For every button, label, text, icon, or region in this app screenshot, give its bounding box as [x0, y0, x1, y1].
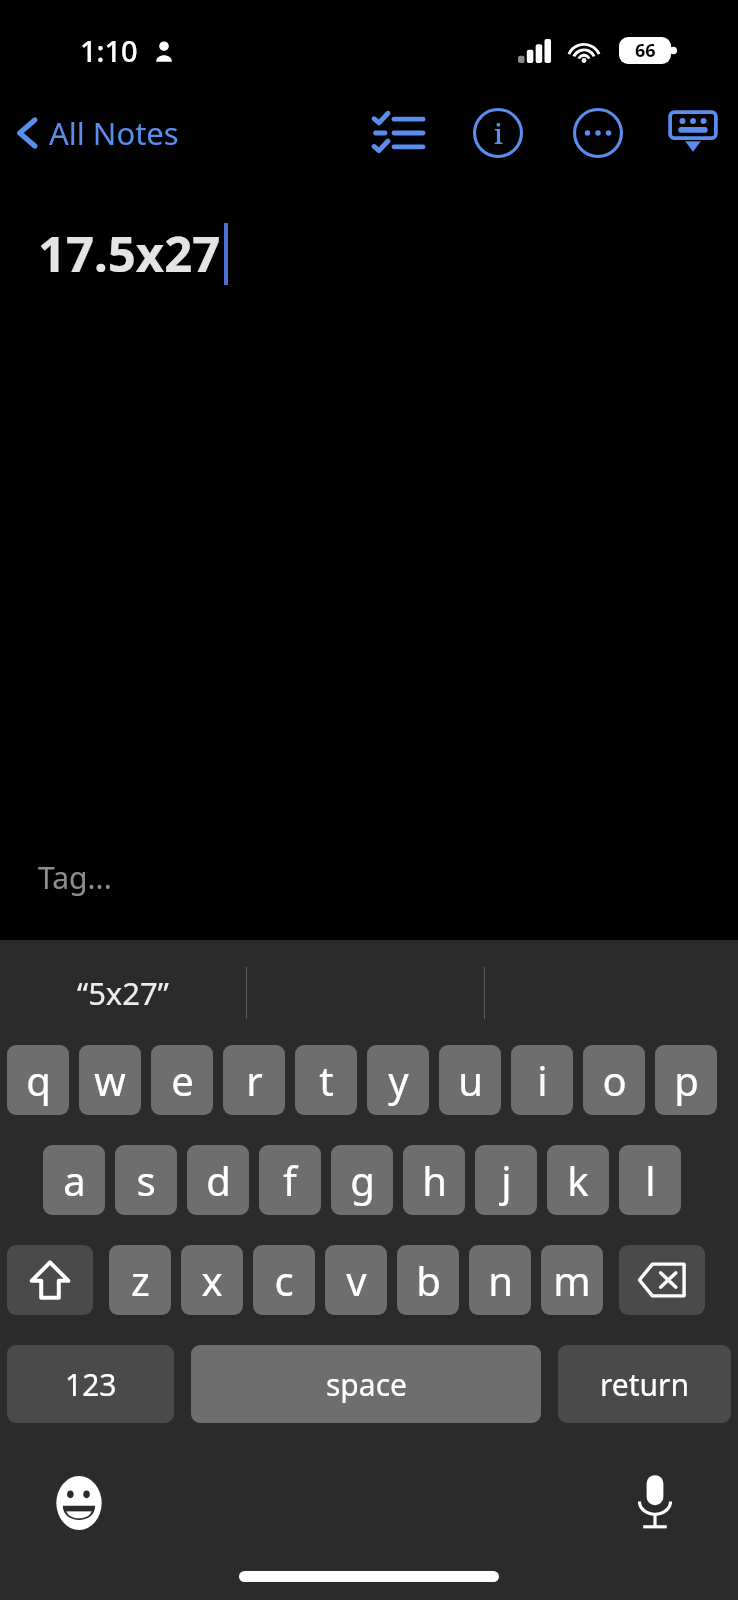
button[interactable]: 123	[7, 1345, 174, 1423]
button[interactable]: p	[655, 1045, 717, 1115]
staticText: b	[416, 1253, 441, 1307]
button[interactable]: Backspace	[619, 1245, 705, 1315]
staticText: n	[488, 1253, 513, 1307]
button[interactable]: v	[325, 1245, 387, 1315]
staticText: e	[171, 1053, 194, 1107]
button[interactable]: x	[181, 1245, 243, 1315]
button[interactable]: “5x27”	[0, 940, 246, 1045]
staticText: 123	[65, 1364, 117, 1405]
button[interactable]: space	[191, 1345, 541, 1423]
staticText: p	[674, 1053, 699, 1107]
button[interactable]: All Notes	[0, 106, 189, 160]
button[interactable]: c	[253, 1245, 315, 1315]
staticText: 66	[635, 38, 656, 63]
button[interactable]: t	[295, 1045, 357, 1115]
staticText: j	[501, 1153, 512, 1207]
button[interactable]: w	[79, 1045, 141, 1115]
button[interactable]: f	[259, 1145, 321, 1215]
staticText: t	[319, 1053, 334, 1107]
staticText: v	[346, 1253, 367, 1307]
staticText: z	[131, 1253, 150, 1307]
staticText: space	[326, 1364, 407, 1405]
staticText: m	[553, 1253, 591, 1307]
button[interactable]: l	[619, 1145, 681, 1215]
staticText: i	[537, 1053, 548, 1107]
staticText: o	[602, 1053, 627, 1107]
button[interactable]: q	[7, 1045, 69, 1115]
staticText: x	[201, 1253, 223, 1307]
staticText: g	[350, 1153, 375, 1207]
button[interactable]: Shift	[7, 1245, 93, 1315]
staticText: l	[645, 1153, 656, 1207]
staticText: All Notes	[49, 112, 179, 154]
staticText: h	[422, 1153, 447, 1207]
staticText: return	[600, 1364, 690, 1405]
staticText: Tag...	[38, 857, 112, 898]
button[interactable]: Dictation	[610, 1458, 700, 1548]
button[interactable]: Tag...	[0, 857, 738, 940]
button[interactable]: y	[367, 1045, 429, 1115]
staticText: 1:10	[80, 31, 138, 70]
button[interactable]: o	[583, 1045, 645, 1115]
button[interactable]: z	[109, 1245, 171, 1315]
staticText: d	[206, 1153, 231, 1207]
button[interactable]: Emoji	[34, 1458, 124, 1548]
staticText: y	[388, 1053, 409, 1107]
staticText: s	[136, 1153, 156, 1207]
button[interactable]: n	[469, 1245, 531, 1315]
button[interactable]: Hide keyboard	[648, 98, 738, 168]
staticText: c	[274, 1253, 294, 1307]
button[interactable]: e	[151, 1045, 213, 1115]
staticText: 17.5x27	[38, 220, 221, 287]
button[interactable]: g	[331, 1145, 393, 1215]
staticText: i	[494, 115, 503, 152]
staticText: k	[567, 1153, 589, 1207]
button[interactable]: u	[439, 1045, 501, 1115]
staticText: r	[246, 1053, 263, 1107]
staticText: q	[26, 1053, 51, 1107]
button[interactable]: 17.5x27	[0, 220, 738, 287]
button[interactable]: r	[223, 1045, 285, 1115]
staticText: f	[283, 1153, 297, 1207]
button[interactable]: Info	[448, 98, 548, 168]
button[interactable]: h	[403, 1145, 465, 1215]
button[interactable]: Checklist	[348, 98, 448, 168]
button[interactable]: m	[541, 1245, 603, 1315]
button[interactable]: a	[43, 1145, 105, 1215]
button[interactable]: More	[548, 98, 648, 168]
button[interactable]: i	[511, 1045, 573, 1115]
staticText: w	[94, 1053, 126, 1107]
button[interactable]: return	[558, 1345, 731, 1423]
staticText: u	[458, 1053, 483, 1107]
staticText: a	[63, 1153, 86, 1207]
button[interactable]: j	[475, 1145, 537, 1215]
button[interactable]: d	[187, 1145, 249, 1215]
button[interactable]: k	[547, 1145, 609, 1215]
button[interactable]: s	[115, 1145, 177, 1215]
staticText: “5x27”	[77, 972, 169, 1014]
button[interactable]: b	[397, 1245, 459, 1315]
